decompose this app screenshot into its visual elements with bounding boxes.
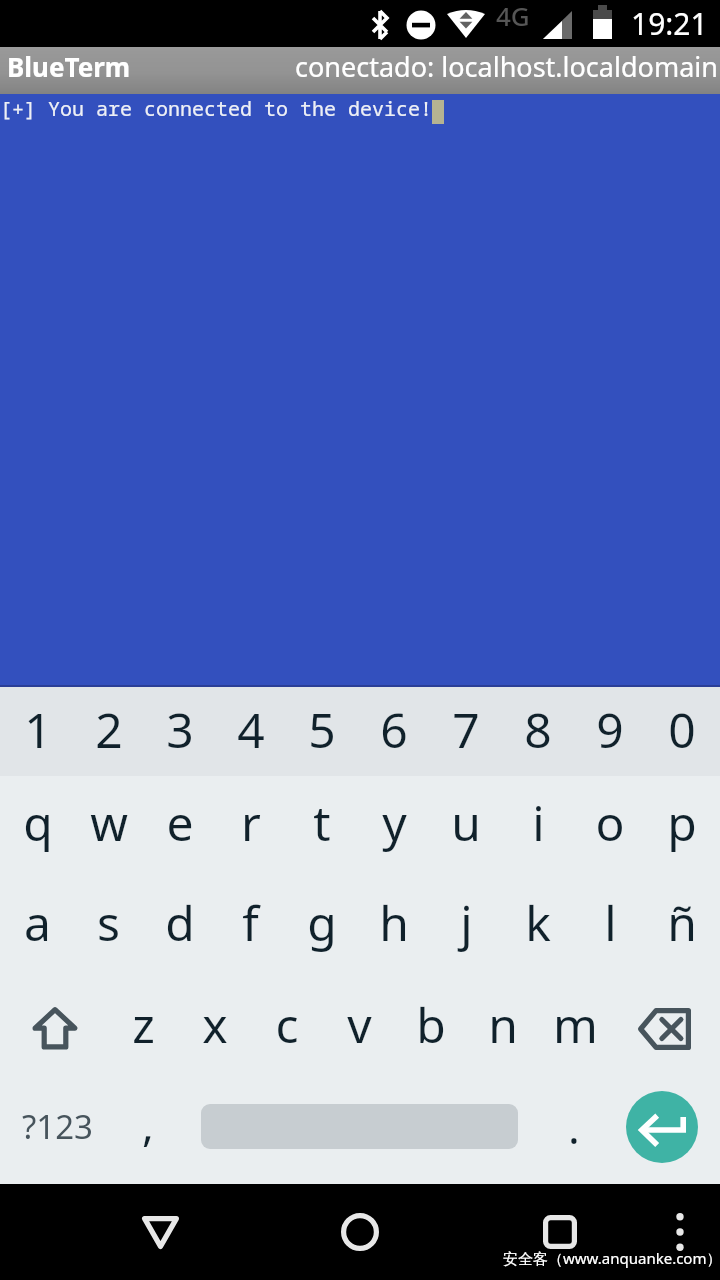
button[interactable]: 4 (215, 688, 286, 776)
staticText: i (532, 790, 545, 855)
staticText: q (23, 790, 53, 855)
button[interactable]: 0 (646, 688, 718, 776)
staticText: 19:21 (631, 3, 708, 44)
staticText: s (97, 890, 120, 955)
button[interactable]: g (286, 876, 358, 976)
button[interactable]: r (215, 776, 286, 876)
staticText: 5 (308, 697, 336, 762)
staticText: ?123 (22, 1104, 93, 1149)
staticText: c (275, 992, 299, 1057)
button[interactable]: 6 (358, 688, 430, 776)
staticText: 2 (95, 697, 123, 762)
button[interactable]: p (646, 776, 718, 876)
staticText: v (347, 992, 372, 1057)
button[interactable]: 3 (144, 688, 215, 776)
button[interactable]: n (467, 976, 539, 1076)
button[interactable]: t (286, 776, 358, 876)
staticText: 安全客（www.anquanke.com） (503, 1248, 720, 1268)
button[interactable]: f (215, 876, 286, 976)
button[interactable]: Back (120, 1184, 200, 1280)
staticText: ñ (667, 890, 697, 955)
button[interactable]: ?123 (2, 1076, 112, 1184)
button[interactable]: l (574, 876, 646, 976)
button[interactable]: d (144, 876, 215, 976)
button[interactable]: i (502, 776, 574, 876)
button[interactable]: More options (650, 1184, 710, 1280)
staticText: 6 (380, 697, 408, 762)
staticText: 8 (524, 697, 552, 762)
button[interactable]: Shift (2, 976, 108, 1076)
staticText: [+] You are connected to the device! (0, 95, 432, 122)
button[interactable]: 5 (286, 688, 358, 776)
staticText: 7 (452, 697, 480, 762)
staticText: g (307, 890, 337, 955)
staticText: z (132, 992, 155, 1057)
staticText: 4G (496, 0, 530, 33)
button[interactable]: 8 (502, 688, 574, 776)
button[interactable]: 1 (2, 688, 73, 776)
button[interactable]: Recent apps (520, 1184, 600, 1280)
staticText: h (379, 890, 409, 955)
staticText: 9 (596, 697, 624, 762)
button[interactable]: y (358, 776, 430, 876)
button[interactable]: q (2, 776, 73, 876)
button[interactable]: c (251, 976, 323, 1076)
staticText: u (451, 790, 481, 855)
staticText: 1 (24, 697, 52, 762)
staticText: p (667, 790, 697, 855)
button[interactable]: m (539, 976, 611, 1076)
staticText: conectado: localhost.localdomain (295, 48, 718, 85)
staticText: d (165, 890, 195, 955)
staticText: 4 (237, 697, 265, 762)
staticText: . (568, 1097, 580, 1157)
staticText: x (202, 992, 228, 1057)
button[interactable]: z (108, 976, 179, 1076)
staticText: m (553, 992, 598, 1057)
staticText: , (142, 1094, 154, 1154)
staticText: 0 (668, 697, 696, 762)
staticText: b (416, 992, 446, 1057)
button[interactable]: h (358, 876, 430, 976)
button[interactable]: , (108, 1076, 188, 1184)
button[interactable]: v (323, 976, 395, 1076)
button[interactable]: ñ (646, 876, 718, 976)
button[interactable]: . (534, 1079, 614, 1187)
staticText: w (90, 790, 128, 855)
button[interactable]: w (73, 776, 144, 876)
staticText: f (242, 890, 259, 955)
button[interactable]: e (144, 776, 215, 876)
staticText: y (382, 790, 407, 855)
button[interactable]: j (430, 876, 502, 976)
button[interactable]: b (395, 976, 467, 1076)
button[interactable]: 9 (574, 688, 646, 776)
button[interactable]: Enter (626, 1091, 698, 1163)
button[interactable]: u (430, 776, 502, 876)
staticText: BlueTerm (7, 49, 131, 84)
button[interactable]: o (574, 776, 646, 876)
button[interactable]: Backspace (611, 976, 718, 1076)
button[interactable]: k (502, 876, 574, 976)
staticText: l (604, 890, 617, 955)
staticText: a (24, 890, 51, 955)
staticText: e (166, 790, 194, 855)
button[interactable]: x (179, 976, 251, 1076)
button[interactable]: 2 (73, 688, 144, 776)
staticText: o (595, 790, 625, 855)
staticText: k (525, 890, 551, 955)
button[interactable]: Home (320, 1184, 400, 1280)
button[interactable]: a (2, 876, 73, 976)
staticText: t (313, 790, 331, 855)
staticText: 3 (166, 697, 194, 762)
button[interactable]: s (73, 876, 144, 976)
staticText: r (241, 790, 261, 855)
staticText: n (488, 992, 518, 1057)
staticText: j (460, 890, 473, 955)
button[interactable]: 7 (430, 688, 502, 776)
